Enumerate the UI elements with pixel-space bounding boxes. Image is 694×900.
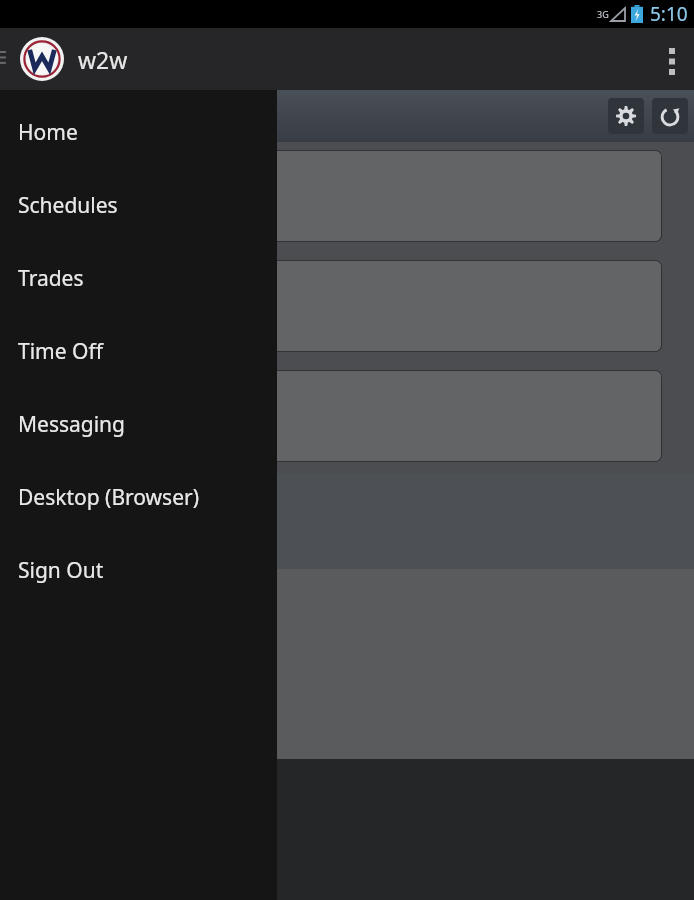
staticText: 5:10 — [650, 1, 688, 27]
button[interactable] — [2, 370, 662, 462]
staticText: Pending T.O. — [8, 102, 137, 131]
staticText: Schedules — [18, 191, 118, 220]
button[interactable]: More options — [650, 28, 694, 90]
staticText: Time Off — [18, 337, 103, 366]
button[interactable]: Time Off — [0, 315, 277, 388]
button[interactable]: Sign Out — [0, 534, 277, 607]
button[interactable]: Refresh — [652, 98, 688, 134]
button[interactable]: Messaging — [0, 388, 277, 461]
button[interactable]: Desktop (Browser) — [0, 461, 277, 534]
button[interactable]: Schedules — [0, 169, 277, 242]
button[interactable] — [2, 260, 662, 352]
button[interactable]: Settings — [608, 98, 644, 134]
button[interactable]: Trades — [0, 242, 277, 315]
staticText: Home — [18, 118, 78, 147]
staticText: Trades — [18, 264, 84, 293]
button[interactable] — [2, 150, 662, 242]
button[interactable]: Home — [0, 96, 277, 169]
button[interactable]: Open navigation drawer — [0, 37, 16, 81]
staticText: Desktop (Browser) — [18, 483, 199, 512]
staticText: Messaging — [18, 410, 126, 439]
staticText: 3G — [597, 8, 609, 20]
staticText: Sign Out — [18, 556, 104, 585]
staticText: w2w — [78, 44, 128, 75]
